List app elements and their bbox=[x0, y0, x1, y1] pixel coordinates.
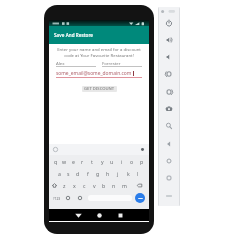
staticText: j bbox=[117, 170, 119, 177]
button[interactable]: some_email@some_domain.com bbox=[56, 70, 142, 78]
button[interactable]: j bbox=[113, 167, 123, 179]
staticText: GET DISCOUNT bbox=[84, 86, 115, 92]
staticText: z bbox=[63, 182, 66, 189]
staticText: x bbox=[73, 182, 76, 189]
button[interactable]: d bbox=[73, 167, 83, 179]
button[interactable]: Forrester bbox=[102, 60, 142, 67]
button[interactable]: Rotate left bbox=[162, 67, 176, 81]
button[interactable]: v bbox=[89, 179, 99, 191]
staticText: Enter your name and email for a discount… bbox=[55, 46, 143, 58]
button[interactable]: ?123 bbox=[51, 191, 62, 205]
button[interactable]: Rotate right bbox=[162, 85, 176, 99]
button[interactable]: t bbox=[87, 155, 97, 167]
button[interactable]: b bbox=[99, 179, 109, 191]
button[interactable]: q bbox=[51, 155, 60, 167]
button[interactable]: m bbox=[119, 179, 129, 191]
button[interactable]: l bbox=[133, 167, 143, 179]
staticText: d bbox=[76, 170, 80, 177]
button[interactable]: a bbox=[55, 167, 64, 179]
button[interactable]: p bbox=[137, 155, 147, 167]
staticText: c bbox=[83, 182, 86, 189]
button[interactable]: Home bbox=[162, 154, 176, 168]
button[interactable]: Save And Restore bbox=[49, 26, 149, 44]
staticText: y bbox=[101, 158, 104, 165]
button[interactable]: Home bbox=[95, 211, 104, 220]
button[interactable]: Keyboard options bbox=[140, 147, 145, 152]
staticText: q bbox=[54, 158, 58, 165]
staticText: Save And Restore bbox=[54, 32, 93, 38]
staticText: b bbox=[102, 182, 106, 189]
staticText: l bbox=[137, 170, 139, 177]
button[interactable]: Enter bbox=[135, 193, 145, 203]
button[interactable]: GET DISCOUNT bbox=[82, 86, 117, 92]
button[interactable]: Take screenshot bbox=[162, 102, 176, 116]
staticText: n bbox=[112, 182, 116, 189]
staticText: h bbox=[106, 170, 110, 177]
staticText: some_email@some_domain.com bbox=[56, 70, 132, 77]
button[interactable]: w bbox=[60, 155, 69, 167]
staticText: k bbox=[127, 170, 130, 177]
button[interactable]: x bbox=[69, 179, 79, 191]
staticText: v bbox=[93, 182, 96, 189]
button[interactable]: z bbox=[59, 179, 69, 191]
button[interactable]: Back bbox=[162, 137, 176, 151]
staticText: i bbox=[121, 158, 123, 165]
staticText: a bbox=[58, 170, 61, 177]
staticText: w bbox=[62, 158, 67, 165]
button[interactable]: Emoji bbox=[64, 191, 72, 205]
staticText: t bbox=[91, 158, 93, 165]
staticText: e bbox=[72, 158, 75, 165]
staticText: s bbox=[67, 170, 70, 177]
staticText: Forrester bbox=[102, 60, 121, 66]
button[interactable]: Shift bbox=[50, 179, 59, 191]
button[interactable]: i bbox=[117, 155, 127, 167]
staticText: o bbox=[130, 158, 134, 165]
button[interactable]: Change keyboard bbox=[76, 191, 84, 205]
button[interactable]: u bbox=[107, 155, 117, 167]
button[interactable]: Back bbox=[74, 211, 83, 220]
button[interactable]: e bbox=[69, 155, 78, 167]
button[interactable]: s bbox=[64, 167, 73, 179]
button[interactable]: g bbox=[93, 167, 103, 179]
button[interactable]: Recents bbox=[162, 171, 176, 185]
staticText: f bbox=[87, 170, 89, 177]
button[interactable]: y bbox=[97, 155, 107, 167]
button[interactable]: n bbox=[109, 179, 119, 191]
button[interactable]: Alex bbox=[56, 60, 96, 67]
button[interactable]: k bbox=[123, 167, 133, 179]
button[interactable]: More bbox=[162, 189, 176, 203]
button[interactable]: Volume up bbox=[162, 33, 176, 47]
staticText: ?123 bbox=[53, 196, 61, 201]
button[interactable]: c bbox=[79, 179, 89, 191]
button[interactable]: Recents bbox=[116, 211, 125, 220]
button[interactable]: Backspace bbox=[135, 179, 144, 191]
button[interactable]: Zoom bbox=[162, 119, 176, 133]
button[interactable]: Google search bbox=[53, 147, 58, 152]
button[interactable]: o bbox=[127, 155, 137, 167]
button[interactable]: Power bbox=[162, 16, 176, 30]
button[interactable]: Volume down bbox=[162, 50, 176, 64]
staticText: m bbox=[122, 182, 127, 189]
staticText: g bbox=[96, 170, 100, 177]
staticText: Alex bbox=[56, 60, 65, 66]
button[interactable]: r bbox=[78, 155, 87, 167]
button[interactable]: f bbox=[83, 167, 93, 179]
button[interactable]: h bbox=[103, 167, 113, 179]
staticText: u bbox=[110, 158, 114, 165]
staticText: p bbox=[140, 158, 144, 165]
staticText: r bbox=[81, 158, 84, 165]
